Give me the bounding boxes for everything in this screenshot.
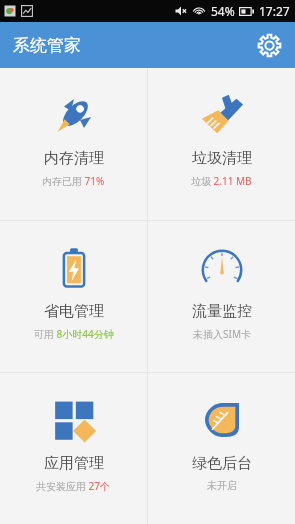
button[interactable]: 流量监控	[148, 221, 295, 372]
staticText: 可用 8小时44分钟	[34, 327, 114, 341]
staticText: 绿色后台	[192, 454, 252, 473]
staticText: 内存清理	[44, 149, 104, 168]
button[interactable]: 垃圾清理	[148, 68, 295, 220]
staticText: 未插入SIM卡	[193, 327, 251, 341]
staticText: 垃圾 2.11 MB	[191, 174, 252, 188]
staticText: 内存已用 71%	[42, 174, 105, 188]
staticText: 垃圾清理	[192, 149, 252, 168]
button[interactable]: 应用管理	[0, 373, 147, 524]
button[interactable]: Settings	[252, 28, 286, 62]
staticText: 未开启	[207, 479, 237, 492]
button[interactable]: 绿色后台	[148, 373, 295, 524]
staticText: 省电管理	[44, 302, 104, 321]
button[interactable]: 省电管理	[0, 221, 147, 372]
staticText: 应用管理	[44, 454, 104, 473]
staticText: 54%	[211, 3, 235, 19]
button[interactable]: 内存清理	[0, 68, 147, 220]
staticText: 系统管家	[13, 35, 81, 56]
staticText: 共安装应用 27个	[36, 479, 111, 493]
staticText: 流量监控	[192, 302, 252, 321]
staticText: 17:27	[259, 3, 290, 19]
